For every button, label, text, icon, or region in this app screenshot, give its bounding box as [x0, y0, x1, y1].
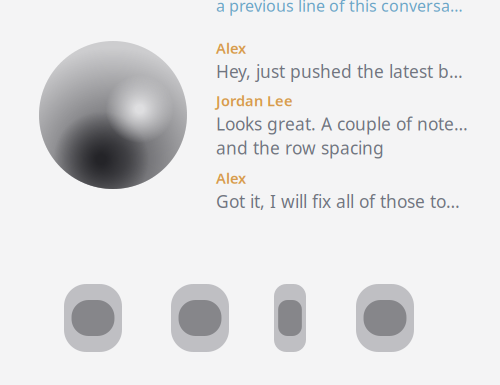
button[interactable]: Library — [64, 280, 122, 356]
button[interactable]: Settings — [356, 280, 414, 356]
staticText: and the row spacing — [216, 136, 384, 159]
staticText: Jordan Lee — [216, 91, 293, 110]
staticText: a previous line of this conversation scr… — [216, 0, 468, 16]
staticText: Looks great. A couple of notes on the he… — [216, 112, 468, 135]
staticText: Got it, I will fix all of those tonight — [216, 190, 468, 213]
staticText: Alex — [216, 168, 246, 188]
button[interactable]: Search — [171, 280, 229, 356]
staticText: Hey, just pushed the latest build for yo… — [216, 60, 468, 83]
staticText: Alex — [216, 38, 246, 58]
button[interactable]: Play — [274, 280, 306, 356]
